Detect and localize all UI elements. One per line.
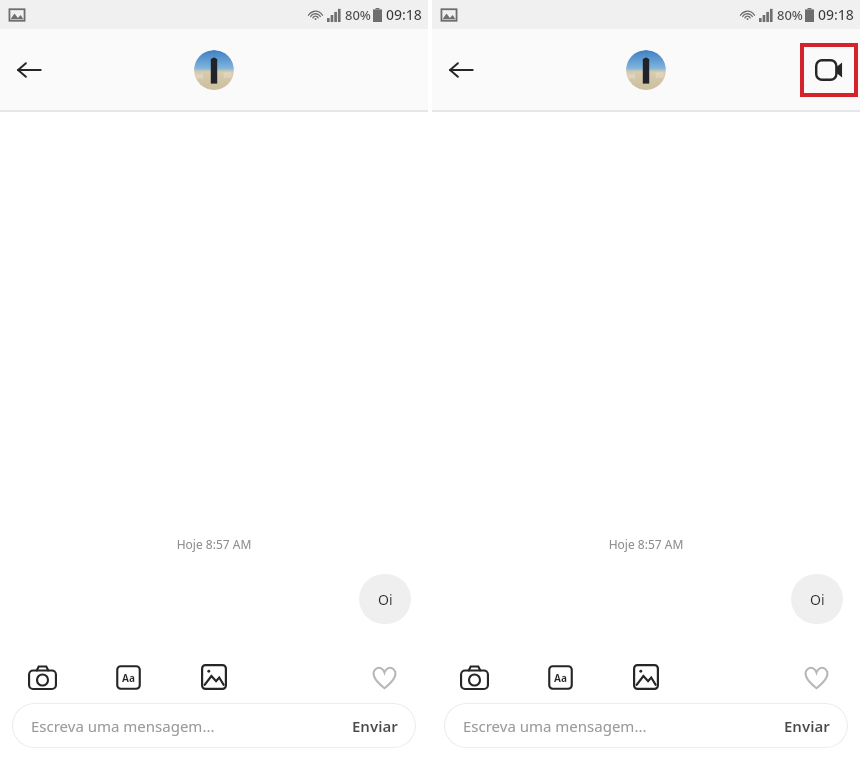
staticText: Escreva uma mensagem... xyxy=(31,716,215,736)
button[interactable]: Profile photo xyxy=(194,50,234,90)
button[interactable]: Oi xyxy=(791,574,843,624)
button[interactable]: Profile photo xyxy=(626,50,666,90)
staticText: Oi xyxy=(810,590,825,609)
staticText: Hoje 8:57 AM xyxy=(0,536,428,552)
button[interactable]: Back xyxy=(438,47,484,93)
staticText: Aa xyxy=(554,671,567,685)
button[interactable]: Enviar xyxy=(352,716,398,736)
button[interactable]: Enviar xyxy=(784,716,830,736)
staticText: Escreva uma mensagem... xyxy=(463,716,647,736)
button[interactable]: Oi xyxy=(359,574,411,624)
staticText: Enviar xyxy=(784,716,830,736)
staticText: 09:18 xyxy=(818,5,854,24)
button[interactable]: Like xyxy=(794,655,838,699)
staticText: 80% xyxy=(345,6,371,24)
button[interactable]: Gallery xyxy=(624,655,668,699)
staticText: Aa xyxy=(122,671,135,685)
button[interactable]: Text xyxy=(106,655,150,699)
button[interactable]: Camera xyxy=(452,655,496,699)
button[interactable]: Gallery xyxy=(192,655,236,699)
button[interactable]: Escreva uma mensagem... xyxy=(12,703,416,748)
staticText: 80% xyxy=(777,6,803,24)
button[interactable]: Escreva uma mensagem... xyxy=(444,703,848,748)
staticText: 09:18 xyxy=(386,5,422,24)
button[interactable]: Text xyxy=(538,655,582,699)
button[interactable]: Video call xyxy=(804,47,854,93)
staticText: Enviar xyxy=(352,716,398,736)
button[interactable]: Like xyxy=(362,655,406,699)
button[interactable]: Camera xyxy=(20,655,64,699)
staticText: Hoje 8:57 AM xyxy=(432,536,860,552)
staticText: Oi xyxy=(378,590,393,609)
button[interactable]: Back xyxy=(6,47,52,93)
